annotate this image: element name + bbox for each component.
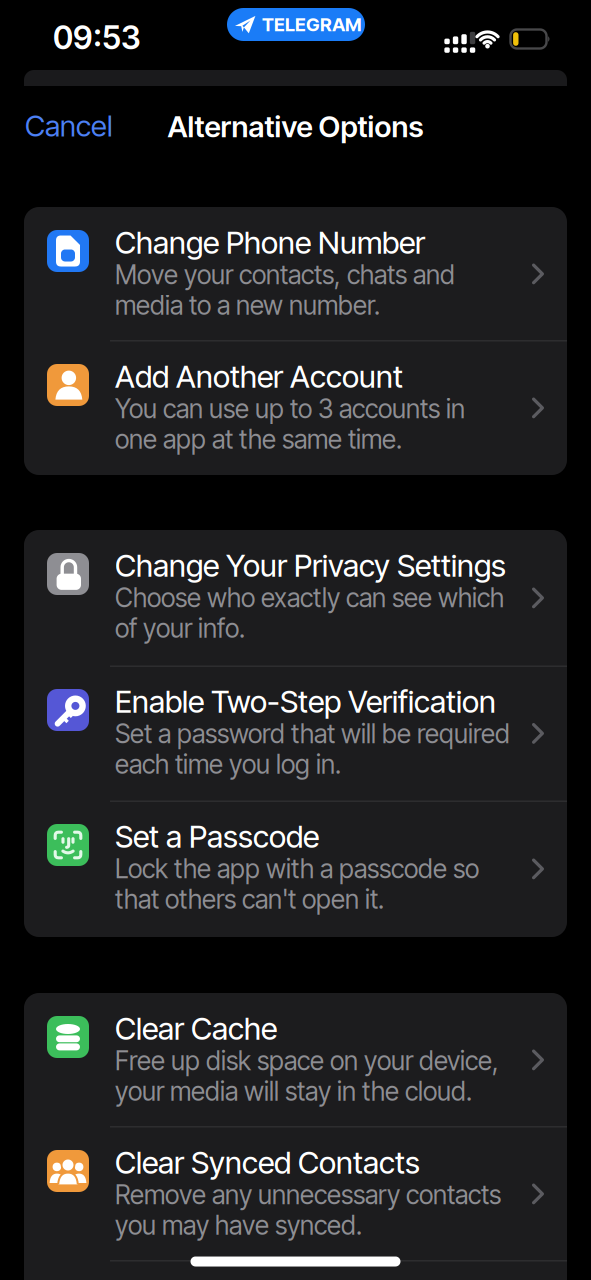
staticText: one app at the same time. — [115, 423, 402, 455]
staticText: that others can't open it. — [115, 883, 384, 915]
staticText: Move your contacts, chats and — [115, 259, 455, 290]
staticText: your media will stay in the cloud. — [115, 1075, 472, 1107]
staticText: Clear Synced Contacts — [115, 1144, 420, 1181]
button[interactable]: Cancel — [25, 108, 113, 143]
staticText: Alternative Options — [167, 109, 423, 144]
staticText: Set a password that will be required — [115, 718, 510, 749]
staticText: 09:53 — [53, 18, 141, 57]
staticText: Enable Two-Step Verification — [115, 683, 496, 720]
button[interactable]: Set a Passcode — [24, 801, 567, 937]
staticText: Remove any unnecessary contacts — [115, 1179, 501, 1210]
button[interactable]: Clear Cache — [24, 993, 567, 1127]
button[interactable]: Change Phone Number — [24, 207, 567, 341]
staticText: Add Another Account — [115, 358, 403, 395]
staticText: You can use up to 3 accounts in — [115, 393, 465, 424]
staticText: Change Phone Number — [115, 224, 425, 261]
button[interactable]: Enable Two-Step Verification — [24, 666, 567, 801]
staticText: Change Your Privacy Settings — [115, 547, 506, 584]
staticText: each time you log in. — [115, 748, 341, 780]
button[interactable]: Add Another Account — [24, 341, 567, 475]
button[interactable]: Clear Synced Contacts — [24, 1127, 567, 1261]
button[interactable]: Change Your Privacy Settings — [24, 530, 567, 666]
button[interactable]: TELEGRAM — [227, 8, 365, 41]
staticText: TELEGRAM — [262, 13, 361, 36]
staticText: of your info. — [115, 612, 245, 644]
staticText: Set a Passcode — [115, 818, 319, 855]
staticText: Free up disk space on your device, — [115, 1045, 499, 1076]
staticText: Clear Cache — [115, 1010, 277, 1047]
staticText: Cancel — [25, 108, 113, 143]
staticText: media to a new number. — [115, 289, 380, 321]
staticText: Lock the app with a passcode so — [115, 853, 479, 884]
staticText: you may have synced. — [115, 1209, 362, 1241]
staticText: Choose who exactly can see which — [115, 582, 504, 613]
